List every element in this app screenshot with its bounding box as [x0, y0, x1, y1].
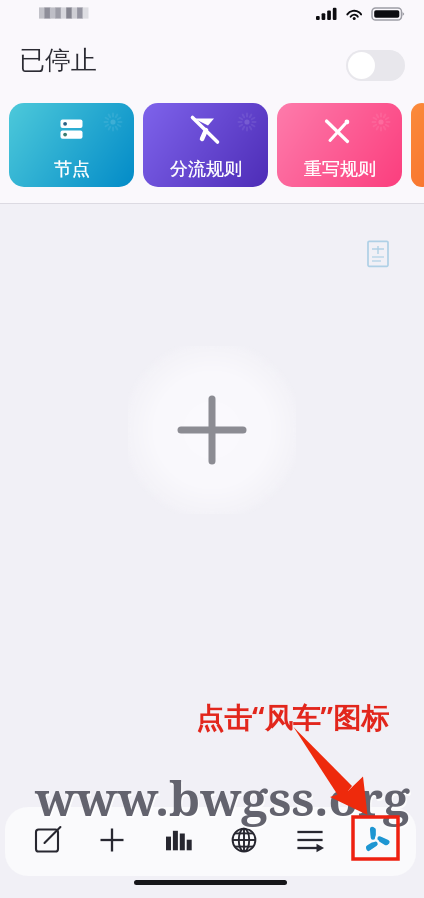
staticText: 重写规则 — [304, 158, 376, 181]
button[interactable]: 节点 — [9, 103, 134, 187]
button[interactable]: Toggle VPN — [346, 50, 405, 81]
button[interactable]: 重写规则 — [277, 103, 402, 187]
button[interactable]: Settings — [352, 816, 400, 864]
staticText: 已停止 — [19, 44, 97, 77]
button[interactable]: 分流规则 — [143, 103, 268, 187]
staticText: www.bwgss.org — [35, 765, 410, 830]
button[interactable]: Log — [364, 238, 394, 268]
staticText: www.bwgss.org — [36, 767, 411, 832]
button[interactable]: Rules — [286, 816, 334, 864]
staticText: 节点 — [54, 158, 90, 181]
button[interactable]: Global — [220, 816, 268, 864]
button[interactable]: Compose — [24, 816, 72, 864]
button[interactable]: Add — [88, 816, 136, 864]
staticText: 分流规则 — [170, 158, 242, 181]
button[interactable]: Add profile — [128, 346, 296, 514]
staticText: 点击“风车”图标 — [196, 698, 389, 736]
button[interactable]: Statistics — [155, 816, 203, 864]
button[interactable] — [411, 103, 424, 187]
